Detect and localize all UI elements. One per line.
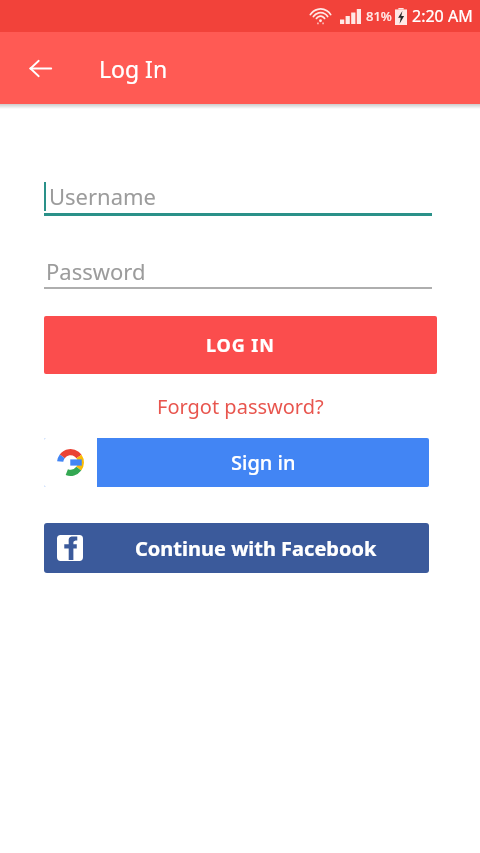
staticText: Log In	[99, 53, 168, 84]
staticText: Sign in	[231, 449, 296, 476]
button[interactable]: Password	[44, 255, 432, 287]
button[interactable]: Sign in	[44, 438, 429, 487]
button[interactable]: Forgot password?	[44, 390, 437, 422]
button[interactable]: Back	[17, 45, 63, 91]
staticText: LOG IN	[206, 333, 275, 358]
staticText: Username	[49, 181, 157, 211]
staticText: 2:20 AM	[412, 5, 473, 27]
button[interactable]: LOG IN	[44, 316, 437, 374]
button[interactable]: Username	[44, 179, 432, 213]
staticText: Continue with Facebook	[135, 535, 377, 562]
staticText: Password	[46, 256, 146, 286]
staticText: 81%	[366, 7, 392, 25]
staticText: Forgot password?	[157, 393, 324, 420]
button[interactable]: Continue with Facebook	[44, 523, 429, 573]
